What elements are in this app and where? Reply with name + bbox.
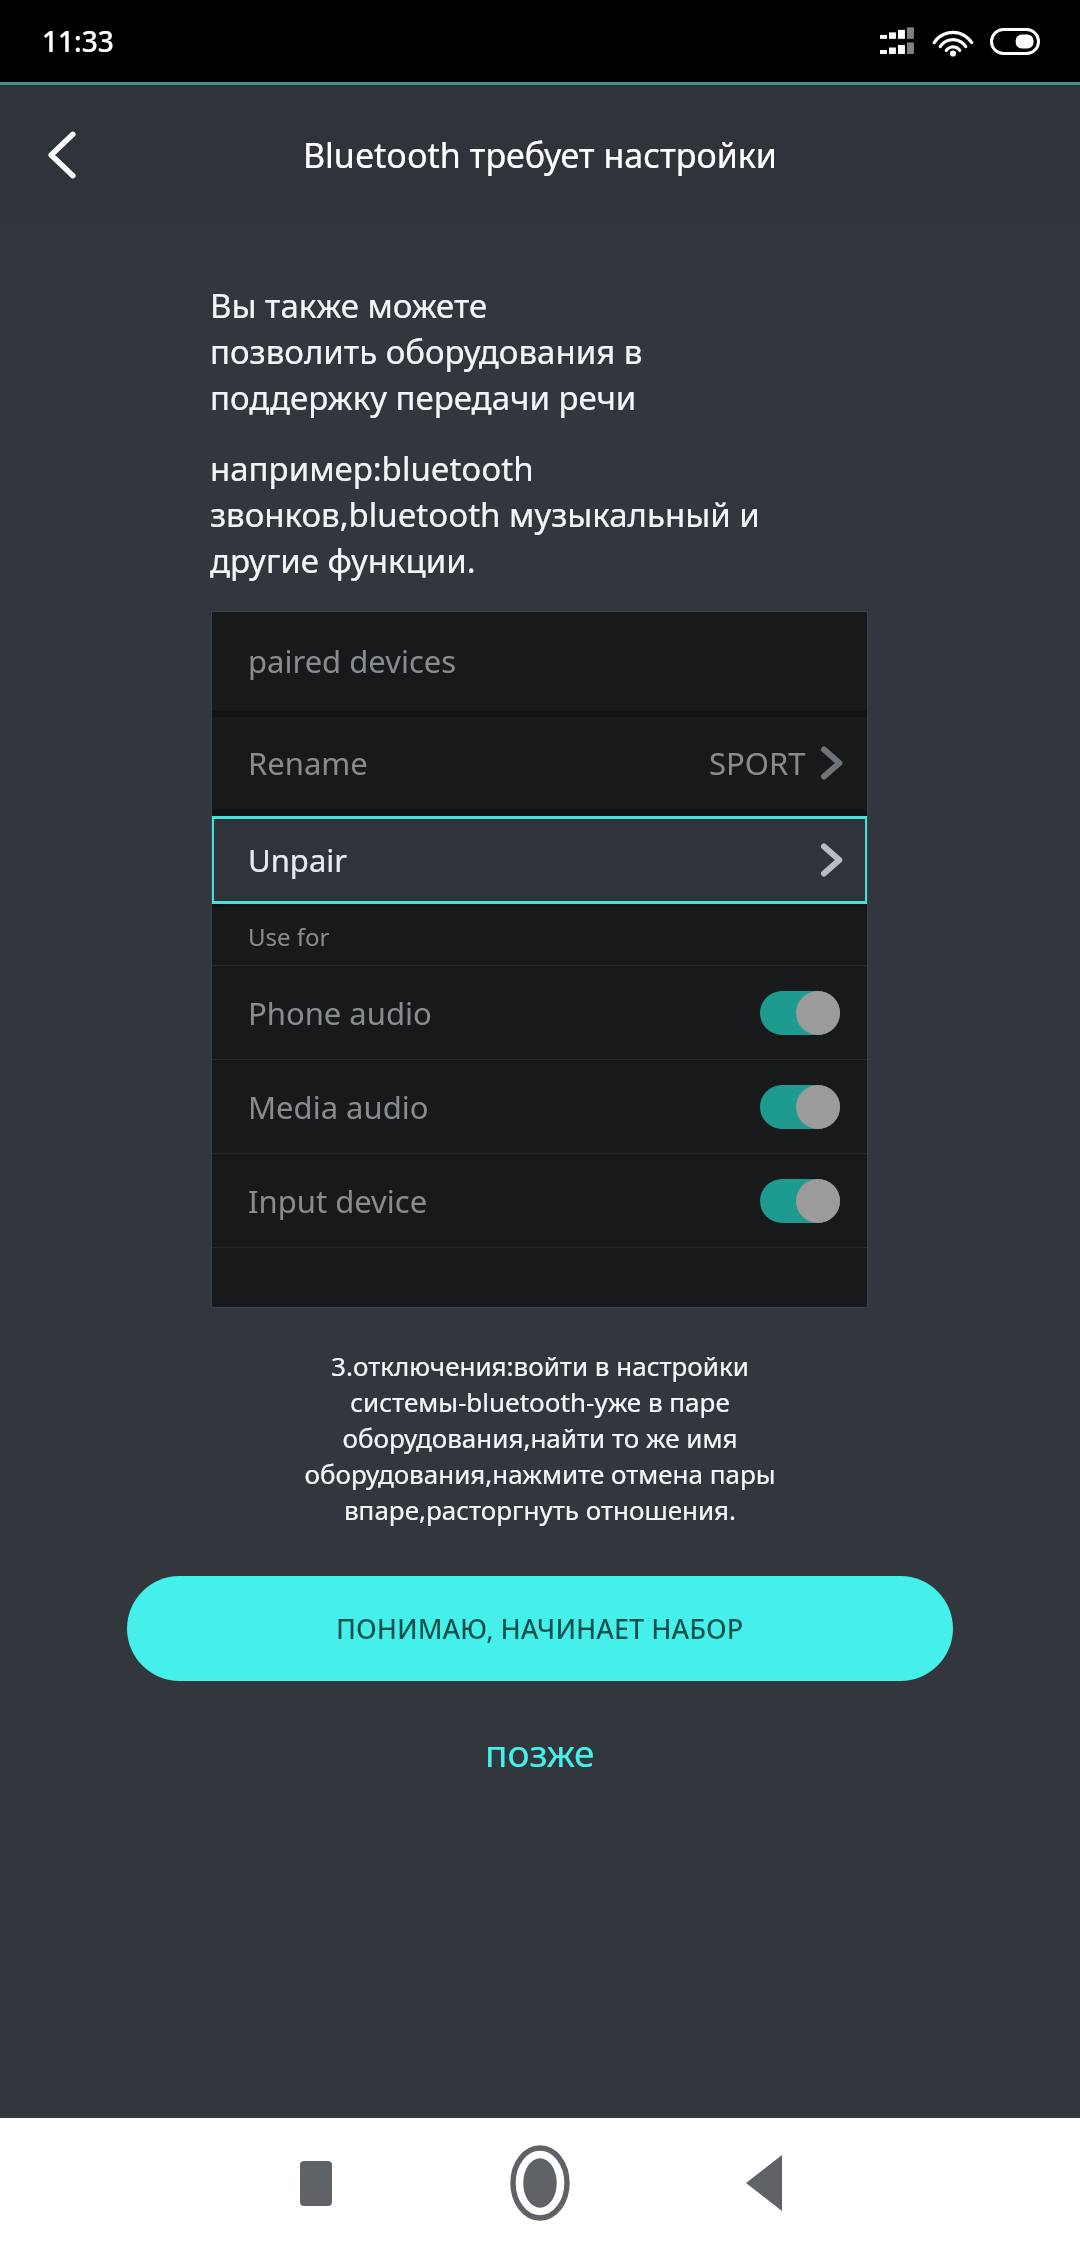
button[interactable]: Home [465, 2118, 615, 2248]
staticText: Rename [248, 742, 368, 784]
staticText: например:bluetooth звонков,bluetooth муз… [210, 446, 760, 583]
button[interactable]: позже [441, 1715, 639, 1789]
staticText: SPORT [709, 742, 806, 784]
staticText: Unpair [248, 839, 348, 881]
staticText: Вы также можете позволить оборудования в… [210, 283, 643, 420]
staticText: Phone audio [248, 992, 432, 1034]
button[interactable]: Unpair [211, 816, 868, 904]
button[interactable]: Phone audio [211, 966, 868, 1059]
staticText: Use for [248, 920, 330, 953]
button[interactable]: Recents [241, 2118, 391, 2248]
staticText: 11:33 [42, 22, 114, 60]
staticText: Bluetooth требует настройки [303, 132, 777, 178]
staticText: ПОНИМАЮ, НАЧИНАЕТ НАБОР [336, 1610, 744, 1647]
button[interactable]: Back [689, 2118, 839, 2248]
staticText: Input device [248, 1180, 428, 1222]
button[interactable]: Use for [211, 907, 868, 965]
button[interactable]: paired devices [211, 611, 868, 711]
button[interactable]: Media audio [211, 1060, 868, 1153]
staticText: Media audio [248, 1086, 429, 1128]
staticText: paired devices [248, 640, 457, 682]
button[interactable]: ПОНИМАЮ, НАЧИНАЕТ НАБОР [127, 1576, 953, 1681]
button[interactable]: Input device [211, 1154, 868, 1247]
staticText: позже [485, 1727, 595, 1777]
button[interactable]: Back [18, 111, 106, 199]
button[interactable]: Rename [211, 717, 868, 809]
staticText: 3.отключения:войти в настройки системы-b… [36, 1348, 1044, 1528]
